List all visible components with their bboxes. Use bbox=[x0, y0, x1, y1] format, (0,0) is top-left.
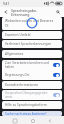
staticText: Erweitert Umfeld bbox=[5, 33, 31, 37]
button[interactable]: Begrenzungs-Ort bbox=[2, 70, 62, 80]
button[interactable]: Einstellung umschalten bbox=[53, 73, 60, 77]
button[interactable]: Kontaktinformationen bbox=[2, 81, 62, 89]
staticText: Begrenzungs-Ort bbox=[5, 73, 30, 77]
button[interactable]: Hilfe zu Spracheingabeform bbox=[2, 101, 62, 109]
staticText: Hilfe zu Spracheingabeform bbox=[5, 103, 47, 107]
button[interactable]: Startseite bbox=[29, 117, 36, 124]
button[interactable]: Einstellung umschalten bbox=[53, 93, 60, 97]
button[interactable]: Vorgesehen Übergangsgeräte verw. bbox=[2, 90, 62, 100]
button[interactable]: Suche nach etwas Anderem? bbox=[2, 111, 62, 116]
staticText: Suche nach etwas Anderem? bbox=[5, 112, 47, 116]
button[interactable]: Verfeinert Spracherkennungen bbox=[2, 40, 62, 48]
button[interactable]: Einstellung umschalten bbox=[53, 63, 60, 67]
button[interactable]: Zurück bbox=[2, 8, 10, 16]
staticText: Kontaktinformationen bbox=[5, 83, 39, 87]
staticText: Vorgesehen Übergangsgeräte verw. bbox=[5, 91, 52, 99]
staticText: Allgemeines bbox=[5, 52, 24, 56]
button[interactable]: Suchen bbox=[54, 8, 62, 16]
button[interactable]: Erweitert Umfeld bbox=[2, 31, 62, 39]
staticText: Verfeinert Spracherkennungen bbox=[5, 42, 52, 46]
button[interactable]: Allgemeines bbox=[2, 50, 62, 58]
button[interactable]: Webseiten suchen und Besseres bbox=[2, 17, 62, 30]
button[interactable]: Zum Verarbeiten berühren und halten bbox=[2, 60, 62, 70]
staticText: 9:41 bbox=[3, 2, 10, 6]
staticText: Zum Verarbeiten berühren und halten bbox=[5, 61, 52, 69]
staticText: Webseiten suchen und Besseres bbox=[5, 19, 54, 23]
staticText: Spracheingabe-Erkennung bbox=[11, 8, 54, 17]
button[interactable]: Zurück bbox=[46, 117, 53, 124]
button[interactable]: Letzte Apps bbox=[11, 117, 18, 124]
staticText: TB bbox=[5, 24, 9, 28]
